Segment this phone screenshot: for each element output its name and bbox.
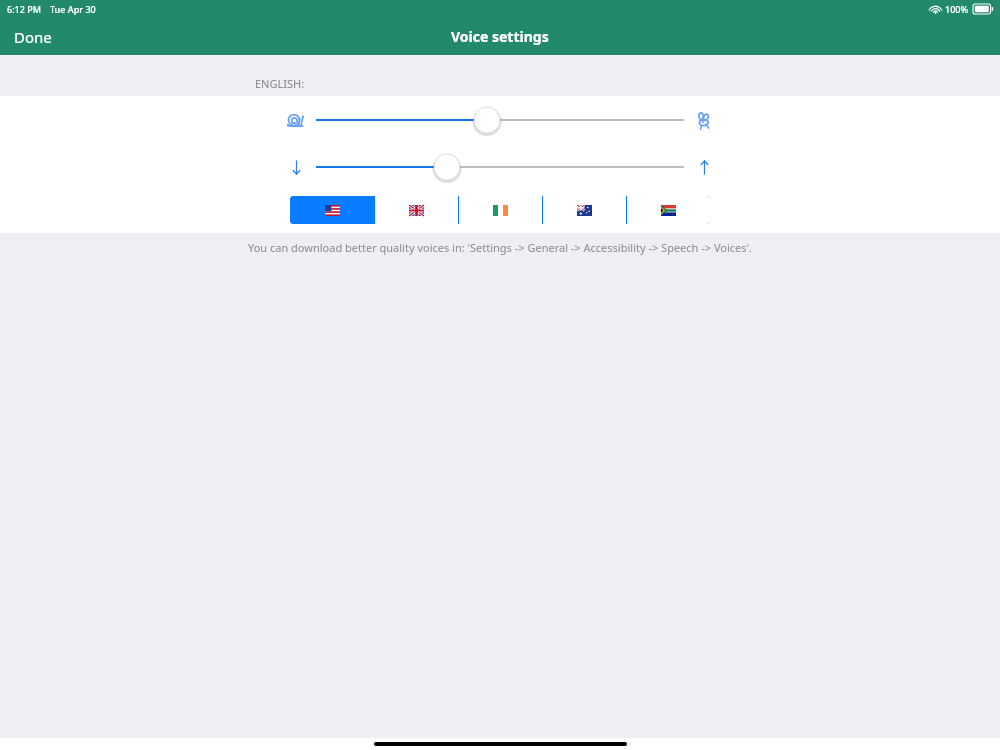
button[interactable]: Higher pitch: [693, 156, 715, 178]
button[interactable]: Slower speech: [285, 109, 307, 131]
button[interactable]: Australia English: [543, 196, 626, 224]
button[interactable]: United Kingdom English: [375, 196, 458, 224]
button[interactable]: South Africa English: [627, 196, 710, 224]
staticText: ENGLISH:: [255, 76, 305, 91]
staticText: Done: [14, 27, 52, 47]
staticText: Tue Apr 30: [50, 3, 96, 15]
staticText: 6:12 PM: [7, 3, 41, 15]
staticText: You can download better quality voices i…: [248, 240, 752, 255]
button[interactable]: [316, 105, 684, 135]
button[interactable]: Faster speech: [693, 109, 715, 131]
button[interactable]: Done: [0, 20, 66, 54]
staticText: 100%: [945, 3, 969, 15]
button[interactable]: Lower pitch: [285, 156, 307, 178]
button[interactable]: Ireland English: [459, 196, 542, 224]
staticText: Voice settings: [451, 27, 549, 46]
button[interactable]: United States English: [290, 196, 374, 224]
button[interactable]: [316, 152, 684, 182]
